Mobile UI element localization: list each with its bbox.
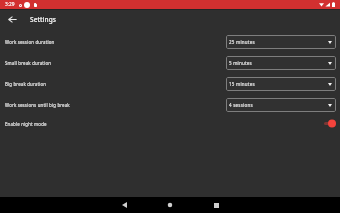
button[interactable]: 15 minutes: [226, 77, 336, 91]
staticText: Settings: [30, 15, 57, 24]
button[interactable]: 5 minutes: [226, 56, 336, 70]
staticText: 3:29: [5, 1, 15, 8]
staticText: Big break duration: [5, 81, 47, 87]
staticText: Small break duration: [5, 60, 52, 66]
button[interactable]: Work session duration: [0, 31, 340, 52]
button[interactable]: Small break duration: [0, 52, 340, 73]
staticText: Enable night mode: [5, 121, 47, 127]
staticText: 15 minutes: [229, 81, 255, 87]
staticText: Work sessions until big break: [5, 102, 70, 108]
button[interactable]: 25 minutes: [226, 35, 336, 49]
staticText: 5 minutes: [229, 60, 252, 66]
button[interactable]: Back: [0, 10, 25, 29]
button[interactable]: Back: [101, 197, 147, 213]
staticText: 4 sessions: [229, 102, 253, 108]
button[interactable]: Enable night mode: [0, 115, 340, 133]
staticText: 25 minutes: [229, 39, 255, 45]
button[interactable]: 4 sessions: [226, 98, 336, 112]
button[interactable]: Home: [147, 197, 193, 213]
staticText: Work session duration: [5, 39, 55, 45]
button[interactable]: Recent apps: [193, 197, 239, 213]
button[interactable]: Work sessions until big break: [0, 94, 340, 115]
button[interactable]: Big break duration: [0, 73, 340, 94]
